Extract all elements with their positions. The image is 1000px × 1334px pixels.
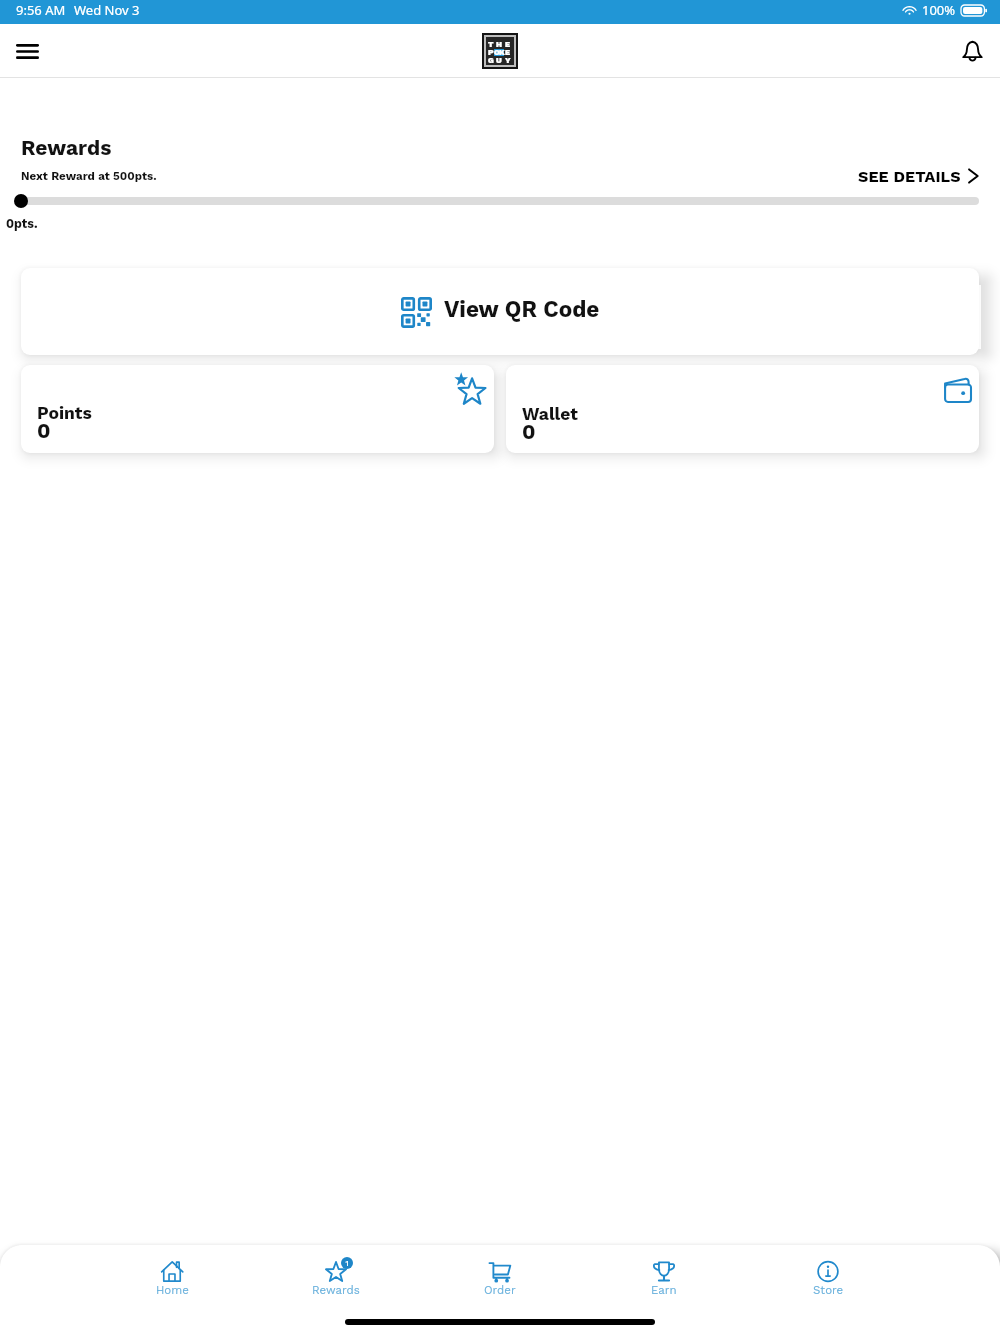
button[interactable]: 1 xyxy=(254,1261,418,1296)
staticText: U xyxy=(496,56,502,65)
staticText: Rewards xyxy=(21,135,112,160)
staticText: Y xyxy=(505,56,511,65)
staticText: G xyxy=(488,56,494,65)
button[interactable]: SEE DETAILS xyxy=(858,166,979,185)
button[interactable]: Points xyxy=(21,365,494,453)
staticText: P xyxy=(488,48,494,57)
button[interactable]: Store xyxy=(746,1261,910,1296)
staticText: Wed Nov 3 xyxy=(74,1,140,19)
button[interactable]: Earn xyxy=(582,1261,746,1296)
staticText: View QR Code xyxy=(444,296,600,322)
staticText: E xyxy=(505,48,511,57)
staticText: H xyxy=(496,40,502,49)
staticText: 0 xyxy=(522,419,536,444)
staticText: Earn xyxy=(651,1283,677,1296)
button[interactable]: Order xyxy=(418,1261,582,1296)
staticText: O xyxy=(494,48,500,57)
staticText: Points xyxy=(37,403,92,424)
staticText: Wallet xyxy=(522,404,578,425)
staticText: E xyxy=(505,40,511,49)
staticText: SEE DETAILS xyxy=(858,167,961,186)
staticText: Store xyxy=(813,1283,844,1296)
button[interactable]: Notifications xyxy=(950,29,995,74)
button[interactable]: Wallet xyxy=(506,365,979,453)
staticText: Next Reward at 500pts. xyxy=(21,169,157,183)
button[interactable]: Open navigation menu xyxy=(5,29,50,74)
staticText: Order xyxy=(484,1283,516,1296)
staticText: 9:56 AM xyxy=(16,1,66,19)
staticText: 0pts. xyxy=(6,216,38,231)
staticText: 1 xyxy=(345,1259,349,1268)
button[interactable]: Home xyxy=(90,1261,254,1296)
staticText: K xyxy=(499,48,505,57)
button[interactable]: View QR Code xyxy=(21,268,979,355)
staticText: 0 xyxy=(37,418,51,443)
staticText: 100% xyxy=(922,1,956,19)
staticText: T xyxy=(488,40,494,49)
staticText: Rewards xyxy=(312,1283,360,1296)
staticText: Home xyxy=(156,1283,189,1296)
